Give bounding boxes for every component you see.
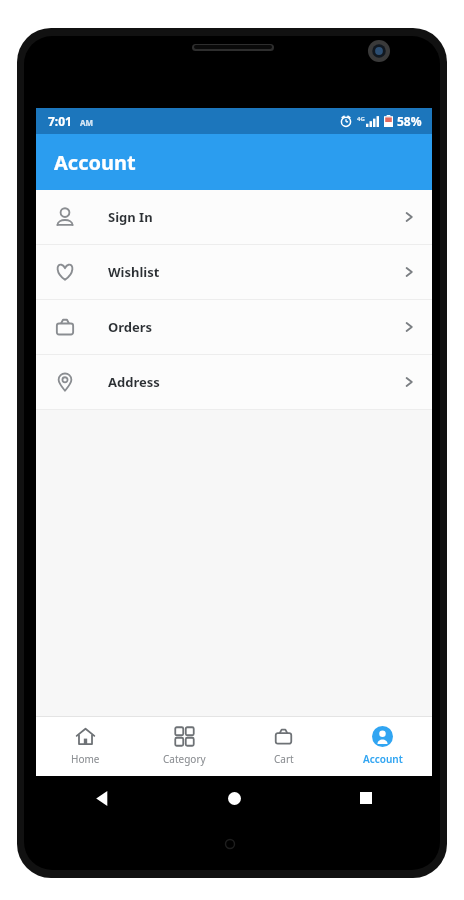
staticText: Orders — [108, 318, 153, 336]
staticText: Sign In — [108, 208, 153, 226]
button[interactable]: Home — [168, 776, 300, 820]
staticText: Account — [54, 149, 136, 176]
button[interactable]: Sign In — [36, 190, 432, 244]
staticText: Cart — [274, 752, 294, 766]
staticText: Home — [71, 752, 100, 766]
button[interactable]: Home — [36, 717, 135, 776]
staticText: 58% — [397, 113, 422, 129]
staticText: Address — [108, 373, 160, 391]
button[interactable]: Account — [333, 717, 432, 776]
button[interactable]: Category — [135, 717, 234, 776]
staticText: 7:01 — [48, 113, 72, 129]
button[interactable]: Back — [36, 776, 168, 820]
button[interactable]: Cart — [234, 717, 333, 776]
button[interactable]: Wishlist — [36, 245, 432, 299]
button[interactable]: Recent apps — [300, 776, 432, 820]
staticText: Wishlist — [108, 263, 160, 281]
staticText: AM — [80, 117, 94, 128]
staticText: 4G — [357, 115, 365, 123]
button[interactable]: Orders — [36, 300, 432, 354]
staticText: Account — [363, 752, 403, 766]
button[interactable]: Address — [36, 355, 432, 409]
staticText: Category — [163, 752, 206, 766]
